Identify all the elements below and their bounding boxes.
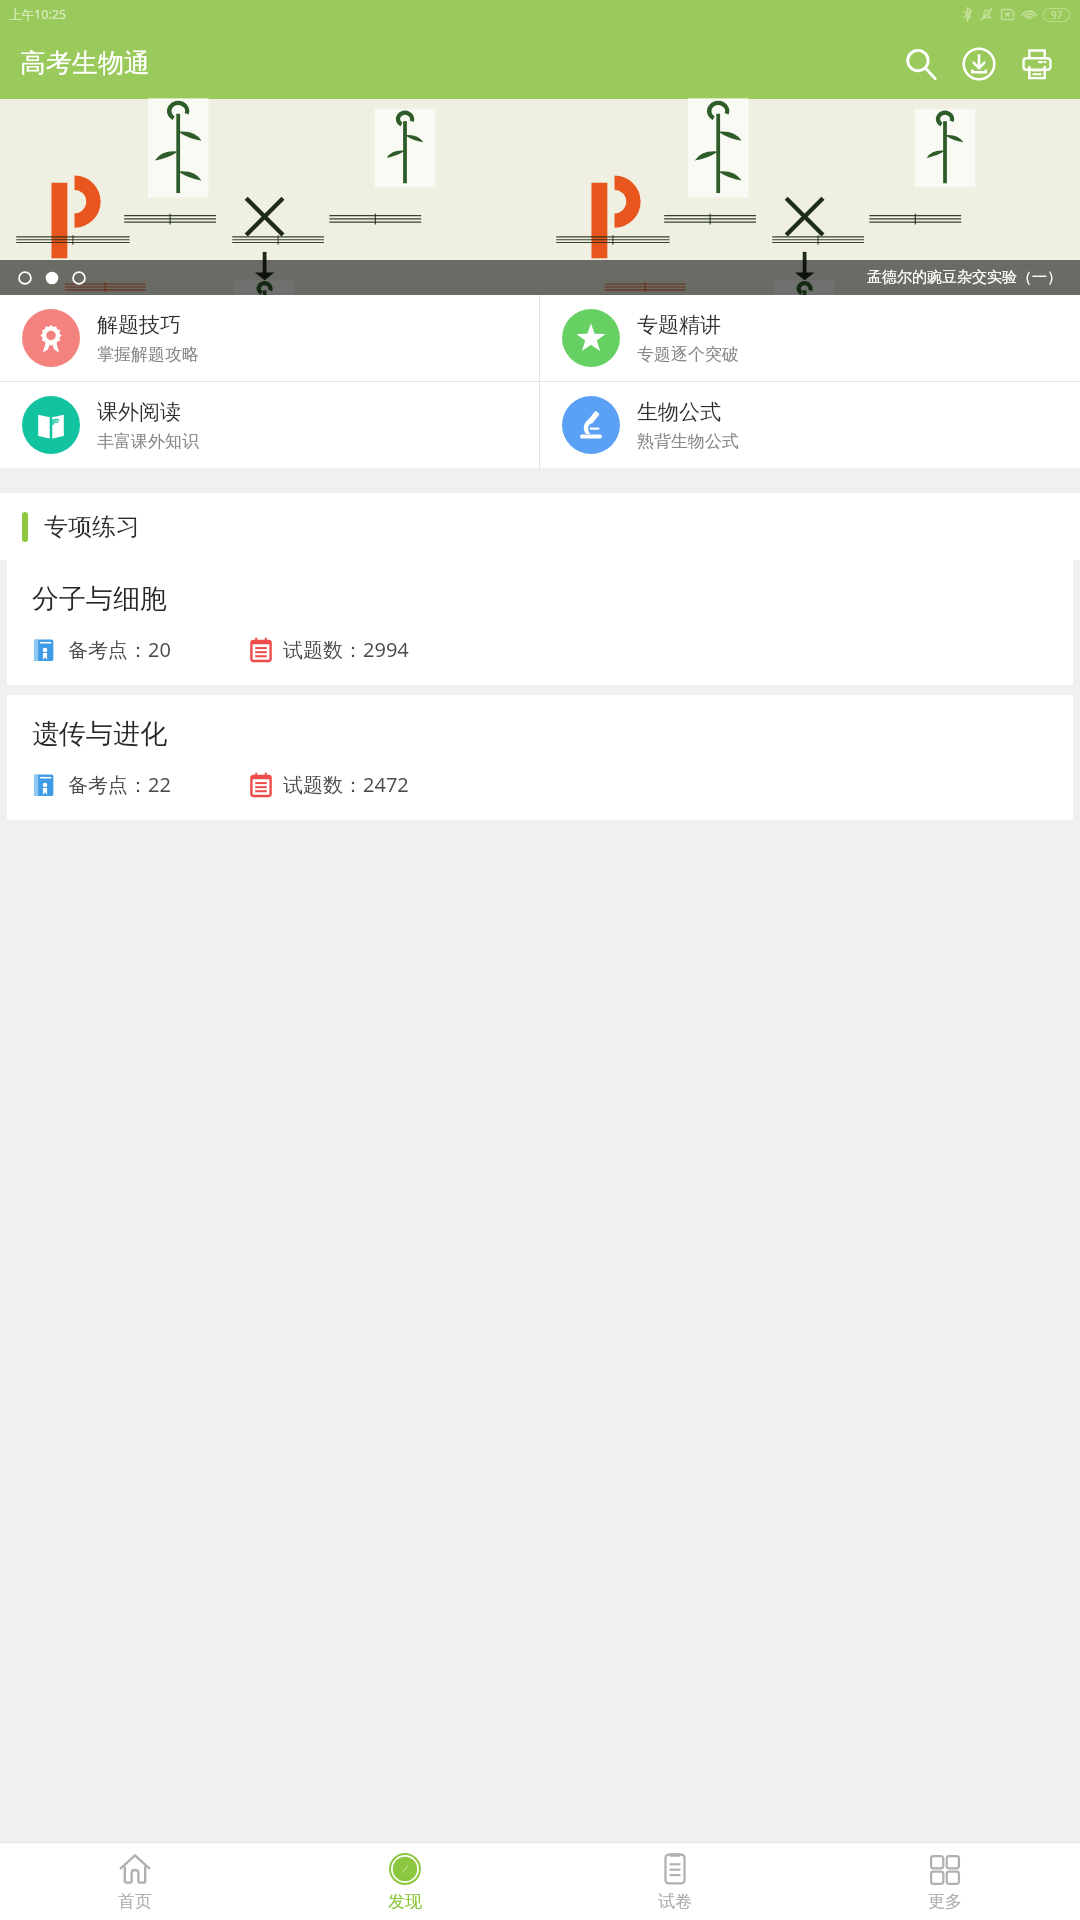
staticText: 生物公式 xyxy=(637,399,721,425)
button[interactable]: 发现 xyxy=(270,1843,540,1920)
button[interactable]: 更多 xyxy=(810,1843,1080,1920)
staticText: 孟德尔的豌豆杂交实验（一） xyxy=(867,268,1062,287)
staticText: 专项练习 xyxy=(44,512,140,542)
button[interactable]: 试卷 xyxy=(540,1843,810,1920)
staticText: 试题数：2472 xyxy=(283,771,409,798)
button[interactable]: Search xyxy=(892,35,950,93)
staticText: 97 xyxy=(1051,8,1063,22)
staticText: 试题数：2994 xyxy=(283,636,409,663)
staticText: 专题精讲 xyxy=(637,312,721,338)
staticText: 专题逐个突破 xyxy=(637,344,739,365)
staticText: 课外阅读 xyxy=(97,399,181,425)
button[interactable]: 分子与细胞 xyxy=(7,560,1073,685)
staticText: 遗传与进化 xyxy=(32,717,167,751)
button[interactable]: Print xyxy=(1008,35,1066,93)
button[interactable]: 解题技巧 xyxy=(0,295,539,381)
staticText: 掌握解题攻略 xyxy=(97,344,199,365)
staticText: 更多 xyxy=(928,1891,962,1912)
button[interactable]: 孟德尔的豌豆杂交实验（一） xyxy=(0,99,1080,295)
staticText: 试卷 xyxy=(658,1891,692,1912)
staticText: 高考生物通 xyxy=(20,47,150,80)
staticText: 上午10:25 xyxy=(9,6,66,23)
staticText: 发现 xyxy=(388,1891,422,1912)
button[interactable]: 遗传与进化 xyxy=(7,695,1073,820)
staticText: 解题技巧 xyxy=(97,312,181,338)
button[interactable]: 专题精讲 xyxy=(540,295,1080,381)
button[interactable]: 首页 xyxy=(0,1843,270,1920)
staticText: 分子与细胞 xyxy=(32,582,167,616)
button[interactable]: 生物公式 xyxy=(540,382,1080,468)
staticText: 备考点：20 xyxy=(68,636,171,663)
staticText: 丰富课外知识 xyxy=(97,431,199,452)
staticText: 熟背生物公式 xyxy=(637,431,739,452)
staticText: 首页 xyxy=(118,1891,152,1912)
button[interactable]: 课外阅读 xyxy=(0,382,539,468)
button[interactable]: Download xyxy=(950,35,1008,93)
staticText: 备考点：22 xyxy=(68,771,171,798)
